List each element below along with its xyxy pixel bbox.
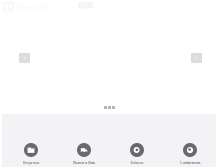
staticText: Enlaces bbox=[130, 160, 143, 165]
button[interactable]: Contáctenos bbox=[163, 143, 216, 165]
button[interactable]: Nuestra flota bbox=[57, 143, 110, 165]
button[interactable]: Empresa bbox=[4, 143, 57, 165]
button[interactable]: Enlaces bbox=[110, 143, 163, 165]
staticText: Nuestra flota bbox=[73, 160, 95, 165]
staticText: Contáctenos bbox=[179, 160, 200, 165]
staticText: Empresa bbox=[23, 160, 39, 165]
